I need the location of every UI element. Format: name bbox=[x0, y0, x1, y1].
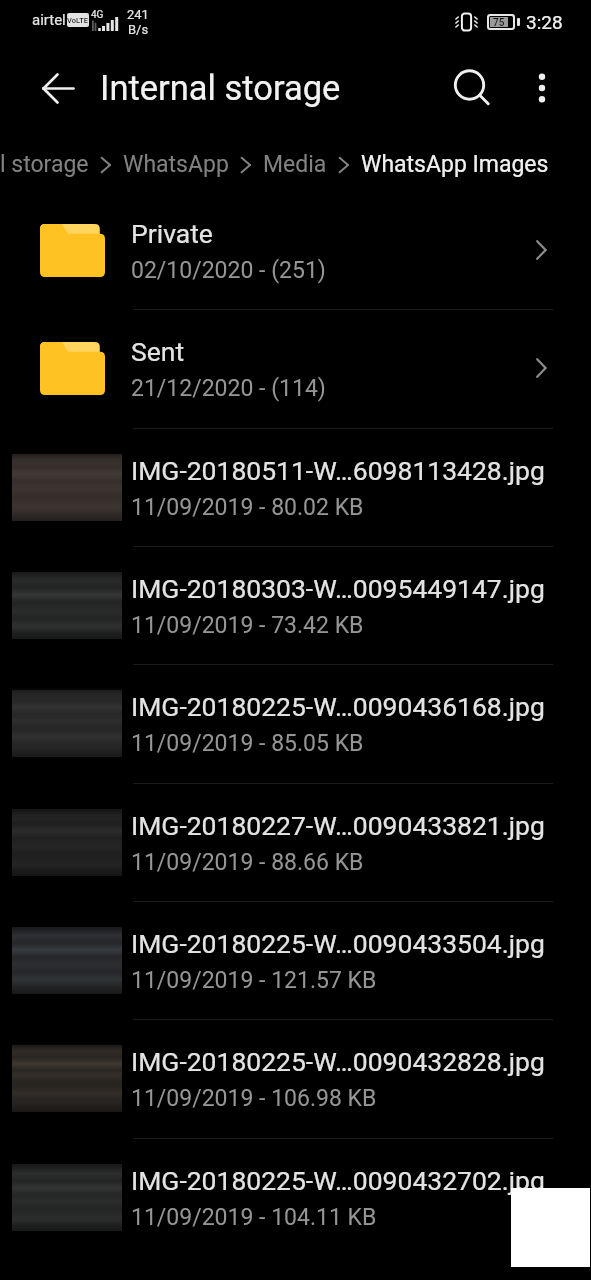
staticText: 21/12/2020 - (114) bbox=[131, 375, 326, 402]
staticText: B/s bbox=[128, 22, 149, 37]
staticText: 75 bbox=[493, 17, 505, 27]
staticText: 02/10/2020 - (251) bbox=[131, 257, 326, 284]
staticText: 241 bbox=[127, 7, 149, 22]
staticText: 3:28 bbox=[526, 11, 563, 33]
staticText: Internal storage bbox=[100, 68, 341, 108]
staticText: 11/09/2019 - 85.05 KB bbox=[131, 730, 364, 757]
staticText: IMG-20180227-W…0090433821.jpg bbox=[131, 810, 545, 841]
staticText: IMG-20180225-W…0090433504.jpg bbox=[131, 928, 545, 959]
staticText: Sent bbox=[131, 336, 185, 367]
staticText: 11/09/2019 - 80.02 KB bbox=[131, 494, 364, 521]
button[interactable]: WhatsApp Images bbox=[361, 151, 549, 178]
staticText: VoLTE bbox=[67, 16, 89, 25]
button[interactable]: Media bbox=[263, 151, 327, 178]
staticText: 4G bbox=[91, 9, 104, 21]
staticText: Private bbox=[131, 218, 213, 249]
button[interactable]: Sent bbox=[0, 309, 591, 427]
staticText: airtel bbox=[32, 11, 66, 29]
staticText: 11/09/2019 - 121.57 KB bbox=[131, 967, 377, 994]
staticText: IMG-20180225-W…0090432702.jpg bbox=[131, 1165, 545, 1196]
button[interactable]: Private bbox=[0, 191, 591, 309]
button[interactable]: Back bbox=[26, 56, 90, 120]
staticText: 11/09/2019 - 104.11 KB bbox=[131, 1204, 377, 1231]
button[interactable]: IMG-20180225-W…0090432828.jpg bbox=[0, 1019, 591, 1137]
staticText: 11/09/2019 - 73.42 KB bbox=[131, 612, 364, 639]
button[interactable]: IMG-20180225-W…0090433504.jpg bbox=[0, 901, 591, 1019]
button[interactable]: More options bbox=[508, 54, 576, 122]
button[interactable]: Search bbox=[436, 52, 508, 124]
staticText: 11/09/2019 - 106.98 KB bbox=[131, 1085, 377, 1112]
staticText: IMG-20180225-W…0090432828.jpg bbox=[131, 1046, 545, 1077]
button[interactable]: IMG-20180225-W…0090432702.jpg bbox=[0, 1138, 591, 1256]
button[interactable]: IMG-20180227-W…0090433821.jpg bbox=[0, 783, 591, 901]
button[interactable]: l storage bbox=[0, 151, 89, 178]
staticText: IMG-20180511-W…6098113428.jpg bbox=[131, 455, 545, 486]
button[interactable]: IMG-20180511-W…6098113428.jpg bbox=[0, 428, 591, 546]
button[interactable]: WhatsApp bbox=[123, 151, 229, 178]
button[interactable]: IMG-20180303-W…0095449147.jpg bbox=[0, 546, 591, 664]
staticText: IMG-20180225-W…0090436168.jpg bbox=[131, 691, 545, 722]
staticText: IMG-20180303-W…0095449147.jpg bbox=[131, 573, 545, 604]
staticText: 11/09/2019 - 88.66 KB bbox=[131, 849, 364, 876]
button[interactable]: IMG-20180225-W…0090436168.jpg bbox=[0, 664, 591, 782]
